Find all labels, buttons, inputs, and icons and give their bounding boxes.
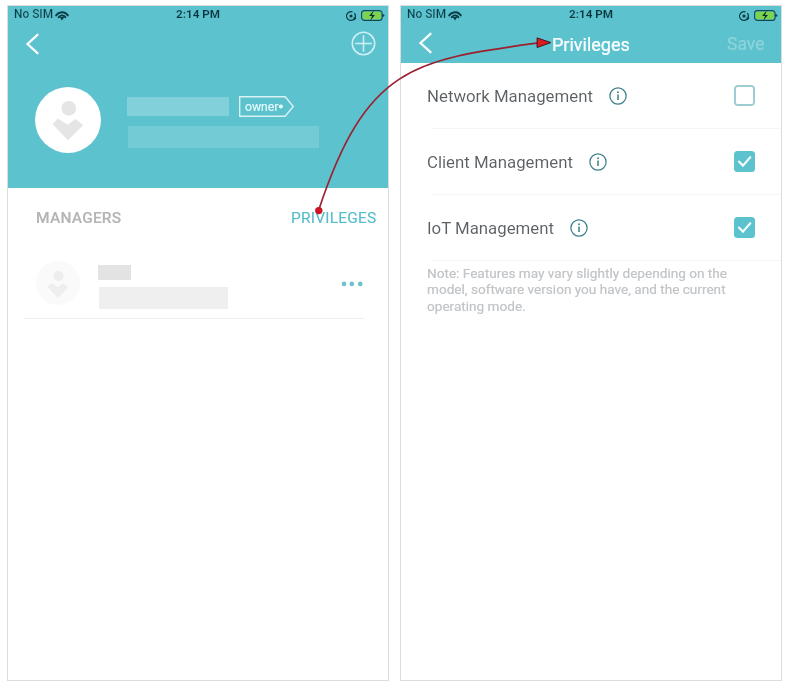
button[interactable]: Back [410, 27, 442, 59]
button[interactable]: owner [239, 96, 294, 117]
button[interactable]: Client Management [400, 129, 782, 194]
button[interactable]: Save [715, 34, 782, 59]
staticText: Note: Features may vary slightly dependi… [427, 265, 736, 314]
staticText: Privileges [552, 34, 630, 55]
staticText: No SIM [14, 7, 54, 21]
button[interactable]: Info [570, 219, 588, 237]
staticText: PRIVILEGES [291, 209, 377, 227]
button[interactable]: Info [609, 87, 627, 105]
staticText: Save [727, 34, 765, 55]
button[interactable]: Network Management [400, 63, 782, 128]
staticText: MANAGERS [36, 209, 122, 227]
button[interactable]: Info [589, 153, 607, 171]
staticText: 2:14 PM [176, 7, 221, 21]
button[interactable]: More options [332, 269, 372, 309]
staticText: No SIM [407, 7, 447, 21]
staticText: Client Management [427, 152, 573, 172]
staticText: owner [245, 100, 279, 114]
button[interactable]: PRIVILEGES [277, 201, 389, 235]
button[interactable]: IoT Management [400, 195, 782, 260]
button[interactable]: Back [17, 28, 49, 60]
staticText: Network Management [427, 86, 593, 106]
staticText: 2:14 PM [569, 7, 614, 21]
staticText: IoT Management [427, 218, 554, 238]
button[interactable]: Add [348, 28, 379, 59]
button[interactable]: More options [7, 245, 389, 325]
